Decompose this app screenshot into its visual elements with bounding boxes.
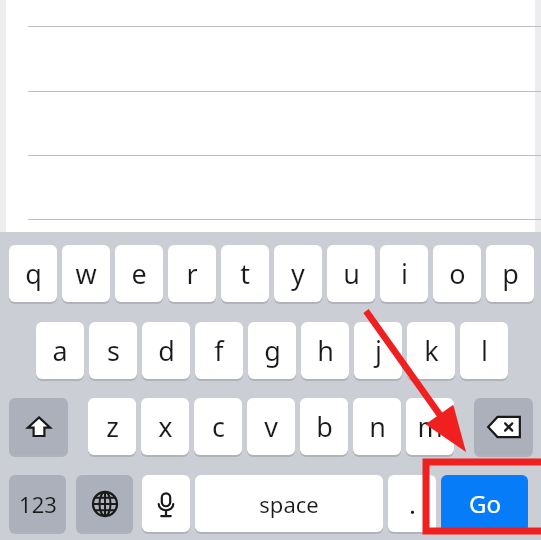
button[interactable]: a	[36, 322, 84, 379]
staticText: d	[158, 332, 175, 369]
button[interactable]: h	[301, 322, 349, 379]
button[interactable]: Change keyboard	[76, 475, 133, 532]
button[interactable]: v	[247, 398, 295, 455]
button[interactable]: z	[88, 398, 136, 455]
staticText: m	[417, 408, 443, 445]
staticText: l	[481, 332, 488, 369]
staticText: a	[52, 332, 68, 369]
staticText: g	[264, 332, 281, 369]
staticText: x	[158, 408, 173, 445]
staticText: n	[369, 408, 386, 445]
staticText: v	[264, 408, 278, 445]
button[interactable]: r	[168, 245, 216, 302]
button[interactable]: y	[274, 245, 322, 302]
button[interactable]: k	[407, 322, 455, 379]
staticText: z	[106, 408, 119, 445]
staticText: i	[401, 255, 408, 292]
button[interactable]: Dictate	[142, 475, 190, 532]
staticText: y	[291, 255, 305, 292]
staticText: e	[131, 255, 147, 292]
staticText: s	[107, 332, 120, 369]
button[interactable]: Shift	[9, 398, 68, 455]
button[interactable]: .	[388, 475, 436, 532]
staticText: j	[375, 332, 382, 369]
button[interactable]: e	[115, 245, 163, 302]
button[interactable]: b	[300, 398, 348, 455]
staticText: 123	[19, 489, 57, 519]
button[interactable]: space	[195, 475, 383, 532]
staticText: b	[316, 408, 333, 445]
staticText: o	[449, 255, 466, 292]
button[interactable]: 123	[9, 475, 66, 532]
staticText: .	[409, 486, 416, 521]
staticText: q	[25, 255, 42, 292]
button[interactable]: c	[194, 398, 242, 455]
button[interactable]: Go	[441, 475, 528, 532]
button[interactable]: Backspace	[474, 398, 533, 455]
button[interactable]: p	[486, 245, 534, 302]
button[interactable]: t	[221, 245, 269, 302]
staticText: Go	[469, 487, 501, 520]
staticText: f	[214, 332, 224, 369]
button[interactable]: i	[380, 245, 428, 302]
button[interactable]: q	[9, 245, 57, 302]
button[interactable]: d	[142, 322, 190, 379]
staticText: u	[343, 255, 360, 292]
staticText: r	[186, 255, 198, 292]
button[interactable]: m	[406, 398, 454, 455]
staticText: space	[259, 489, 319, 519]
button[interactable]: o	[433, 245, 481, 302]
button[interactable]: x	[141, 398, 189, 455]
staticText: w	[75, 255, 97, 292]
button[interactable]: j	[354, 322, 402, 379]
staticText: k	[424, 332, 439, 369]
staticText: h	[317, 332, 334, 369]
button[interactable]: w	[62, 245, 110, 302]
staticText: c	[212, 408, 225, 445]
button[interactable]: s	[89, 322, 137, 379]
button[interactable]: f	[195, 322, 243, 379]
button[interactable]: g	[248, 322, 296, 379]
button[interactable]: u	[327, 245, 375, 302]
button[interactable]: l	[460, 322, 508, 379]
staticText: p	[502, 255, 519, 292]
button[interactable]: n	[353, 398, 401, 455]
staticText: t	[240, 255, 250, 292]
